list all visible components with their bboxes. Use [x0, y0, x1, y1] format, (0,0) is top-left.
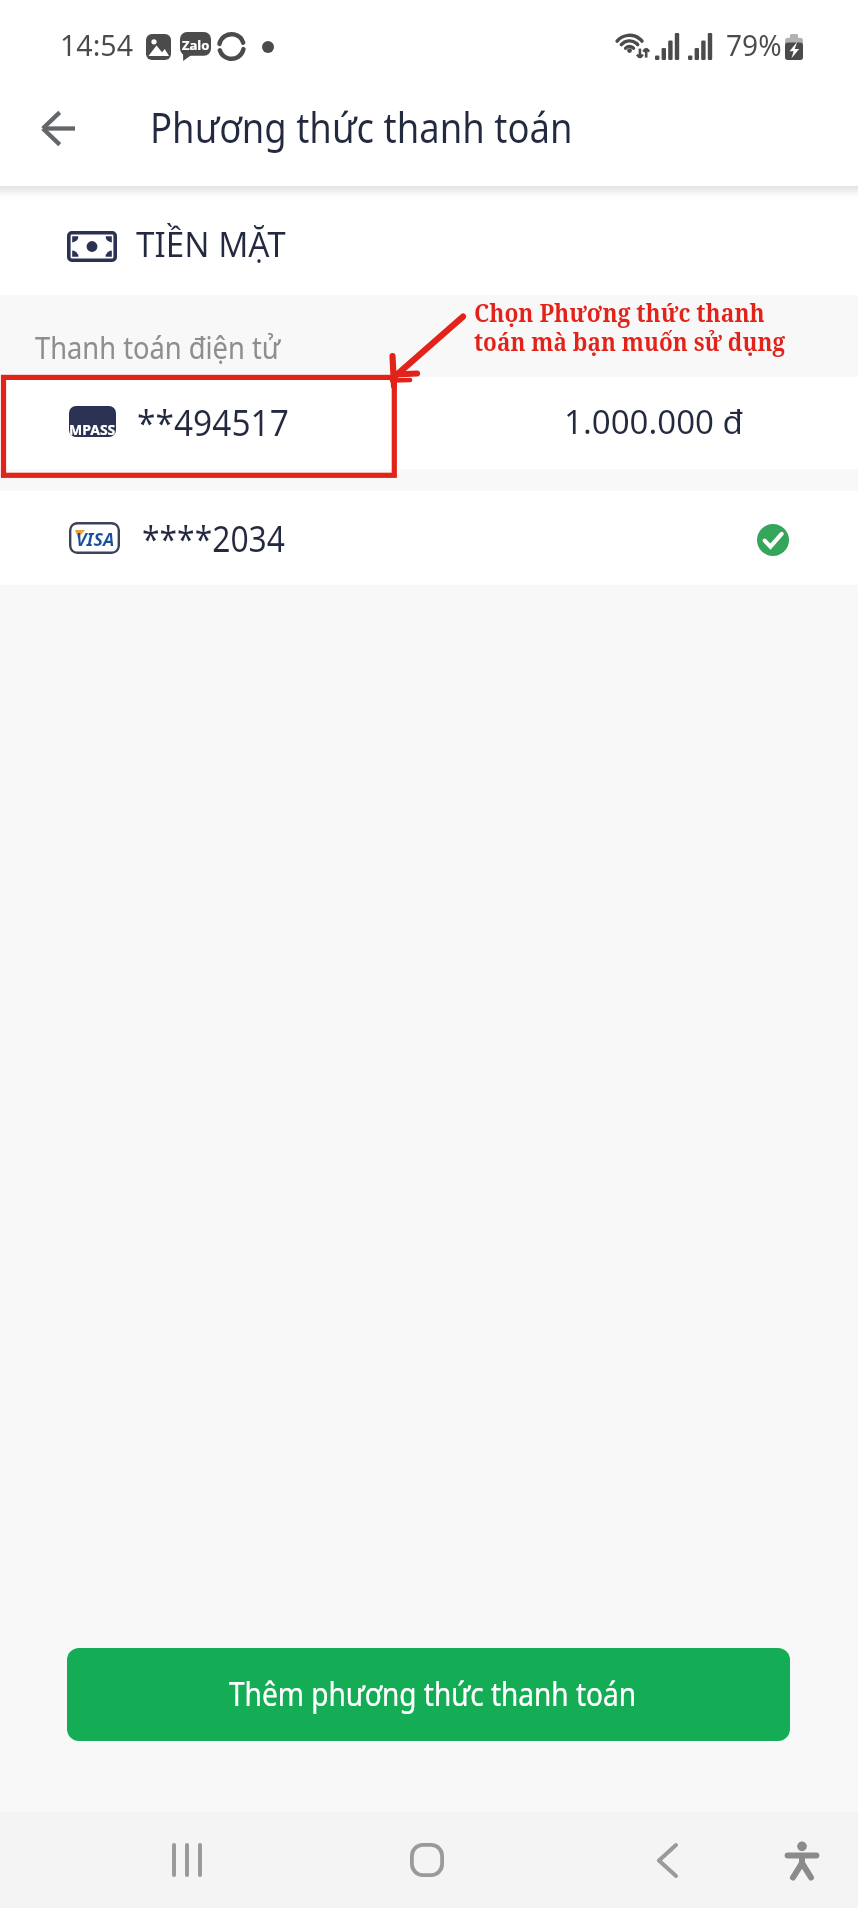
- button[interactable]: Recent apps: [139, 1812, 235, 1908]
- staticText: TIỀN MẶT: [136, 219, 286, 267]
- button[interactable]: Home: [379, 1812, 475, 1908]
- staticText: Phương thức thanh toán: [150, 99, 573, 155]
- staticText: Zalo: [182, 36, 210, 54]
- button[interactable]: MPASS: [0, 377, 858, 469]
- button[interactable]: Thêm phương thức thanh toán: [67, 1648, 790, 1741]
- staticText: **494517: [137, 397, 289, 446]
- button[interactable]: Back: [29, 99, 87, 157]
- staticText: 14:54: [60, 24, 133, 64]
- staticText: Chọn Phương thức thanh: [474, 295, 765, 329]
- button[interactable]: VISA: [0, 491, 858, 585]
- staticText: VISA: [76, 527, 115, 552]
- staticText: ****2034: [142, 513, 285, 563]
- staticText: Thanh toán điện tử: [35, 325, 281, 368]
- button[interactable]: Back: [619, 1812, 715, 1908]
- staticText: toán mà bạn muốn sử dụng: [474, 324, 785, 358]
- button[interactable]: Accessibility: [754, 1812, 850, 1908]
- button[interactable]: TIỀN MẶT: [0, 189, 858, 295]
- staticText: Thêm phương thức thanh toán: [229, 1672, 636, 1716]
- staticText: MPASS: [69, 420, 116, 437]
- staticText: 79%: [726, 24, 782, 64]
- staticText: 1.000.000 đ: [564, 399, 743, 443]
